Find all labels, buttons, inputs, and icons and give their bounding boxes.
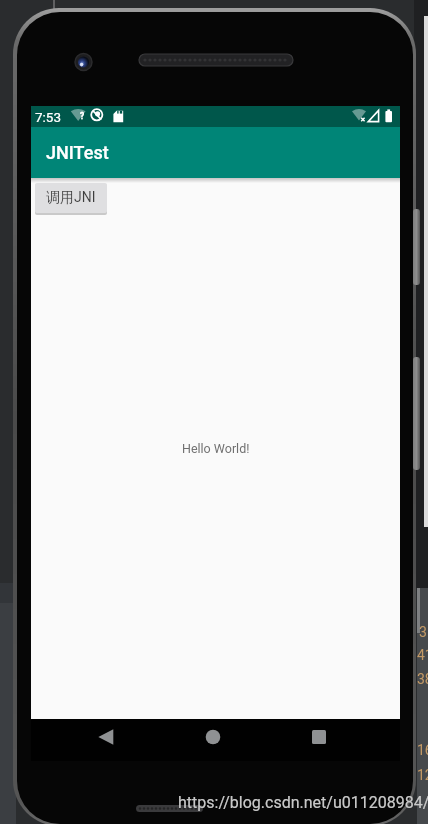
staticText: 调用JNI: [46, 189, 96, 207]
staticText: JNITest: [46, 142, 109, 163]
staticText: 3: [419, 624, 427, 640]
staticText: 16: [417, 742, 428, 758]
button[interactable]: 调用JNI: [35, 183, 107, 213]
staticText: 38: [417, 671, 428, 687]
staticText: 12: [417, 767, 428, 783]
staticText: 41: [417, 647, 428, 663]
staticText: Hello World!: [182, 441, 250, 456]
staticText: ?: [80, 111, 85, 121]
button[interactable]: [291, 719, 347, 761]
staticText: 7:53: [35, 109, 62, 125]
button[interactable]: [85, 719, 141, 761]
button[interactable]: [185, 719, 241, 761]
staticText: https://blog.csdn.net/u011208984/e: [178, 793, 428, 812]
